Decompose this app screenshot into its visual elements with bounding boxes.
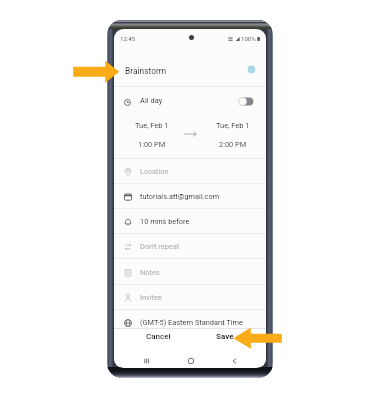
staticText: Invitee <box>140 293 162 302</box>
button[interactable]: Tue, Feb 1 <box>135 121 169 130</box>
button[interactable]: Back <box>227 354 241 367</box>
button[interactable]: All day toggle <box>238 97 254 106</box>
button[interactable]: 10 mins before <box>114 209 266 234</box>
staticText: 12:45 <box>120 35 136 42</box>
button[interactable]: (GMT-5) Eastern Standard Time <box>114 310 266 330</box>
button[interactable]: Brainstorm <box>114 46 266 87</box>
staticText: tutorials.att@gmail.com <box>140 192 220 201</box>
button[interactable]: 2:00 PM <box>219 140 247 149</box>
staticText: 10 mins before <box>140 217 190 226</box>
staticText: Don't repeat <box>140 242 180 251</box>
button[interactable]: Home <box>184 354 198 367</box>
button[interactable]: Recent apps <box>140 354 154 367</box>
button[interactable]: 1:00 PM <box>138 140 166 149</box>
button[interactable]: Don't repeat <box>114 234 266 259</box>
button[interactable]: Cancel <box>128 331 188 342</box>
staticText: Brainstorm <box>125 66 167 76</box>
button[interactable]: Tue, Feb 1 <box>216 121 250 130</box>
staticText: Cancel <box>146 332 171 341</box>
staticText: Notes <box>140 268 160 277</box>
button[interactable]: Location <box>114 159 266 184</box>
button[interactable]: Save <box>195 331 255 342</box>
button[interactable]: All day <box>114 87 266 113</box>
staticText: (GMT-5) Eastern Standard Time <box>140 318 243 327</box>
button[interactable]: tutorials.att@gmail.com <box>114 184 266 209</box>
button[interactable]: Notes <box>114 260 266 285</box>
staticText: 100% <box>241 35 256 42</box>
staticText: All day <box>140 96 163 105</box>
button[interactable]: Invitee <box>114 285 266 310</box>
staticText: Save <box>216 332 234 341</box>
staticText: Location <box>140 167 169 176</box>
